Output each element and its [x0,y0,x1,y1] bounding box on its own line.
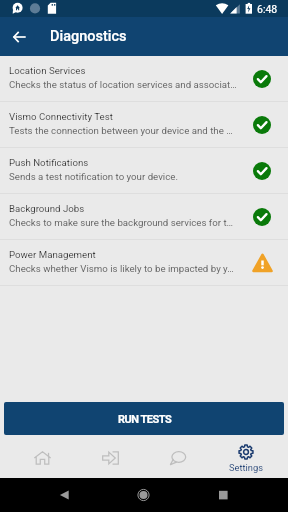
staticText: 6:48 [257,3,278,15]
staticText: Checks whether Vismo is likely to be imp… [9,263,234,274]
staticText: Vismo Connectivity Test [9,111,113,122]
button[interactable]: Power Management [0,240,288,286]
button[interactable]: Back [0,17,39,56]
staticText: Checks the status of location services a… [9,79,237,90]
button[interactable]: Home [8,438,76,478]
staticText: Tests the connection between your device… [9,125,233,136]
button[interactable]: Location Services [0,56,288,102]
staticText: Checks to make sure the background servi… [9,217,234,228]
button[interactable]: Check in [76,438,144,478]
button[interactable]: Settings [212,438,280,478]
button[interactable]: Background Jobs [0,194,288,240]
staticText: Sends a test notification to your device… [9,171,178,182]
button[interactable]: Push Notifications [0,148,288,194]
staticText: Settings [229,462,263,473]
button[interactable]: Messages [144,438,212,478]
staticText: Location Services [9,65,86,76]
button[interactable]: Vismo Connectivity Test [0,102,288,148]
staticText: RUN TESTS [118,413,172,426]
staticText: Power Management [9,249,96,260]
button[interactable]: RUN TESTS [4,402,284,435]
staticText: Background Jobs [9,203,85,214]
staticText: Push Notifications [9,157,89,168]
staticText: Diagnostics [50,28,127,45]
